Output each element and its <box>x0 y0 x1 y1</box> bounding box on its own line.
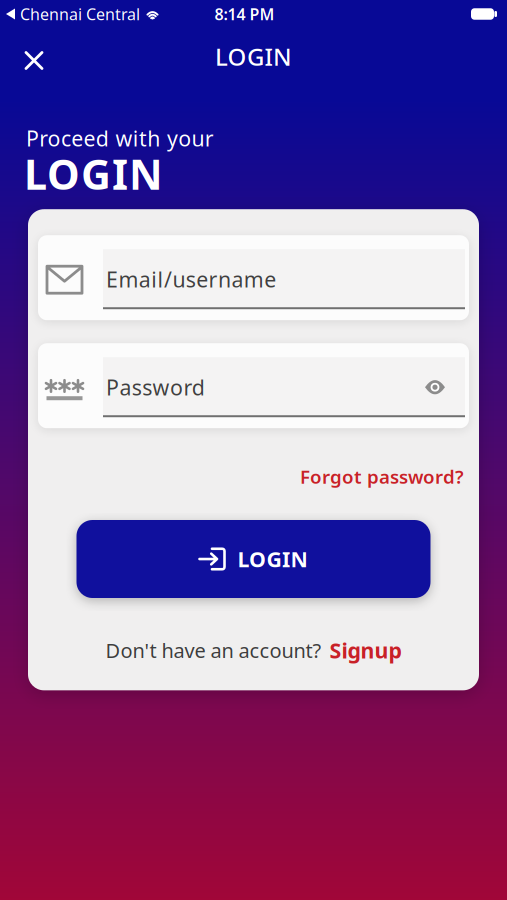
staticText: Email/username <box>106 265 276 293</box>
button[interactable]: LOGIN <box>76 520 430 598</box>
button[interactable] <box>425 380 465 394</box>
staticText: LOGIN <box>237 545 307 573</box>
staticText: Proceed with your <box>26 124 214 152</box>
button[interactable]: Signup <box>329 636 401 664</box>
staticText: Password <box>106 373 205 401</box>
staticText: LOGIN <box>24 146 163 201</box>
button[interactable]: Password <box>38 343 469 428</box>
button[interactable]: Email/username <box>38 235 469 320</box>
staticText: LOGIN <box>215 41 292 72</box>
button[interactable]: Forgot password? <box>300 464 469 489</box>
staticText: Don't have an account? <box>105 637 321 663</box>
staticText: 8:14 PM <box>214 3 274 25</box>
button[interactable] <box>0 40 42 72</box>
staticText: Chennai Central <box>20 3 140 25</box>
staticText: Forgot password? <box>300 464 464 489</box>
staticText: Signup <box>329 636 401 664</box>
